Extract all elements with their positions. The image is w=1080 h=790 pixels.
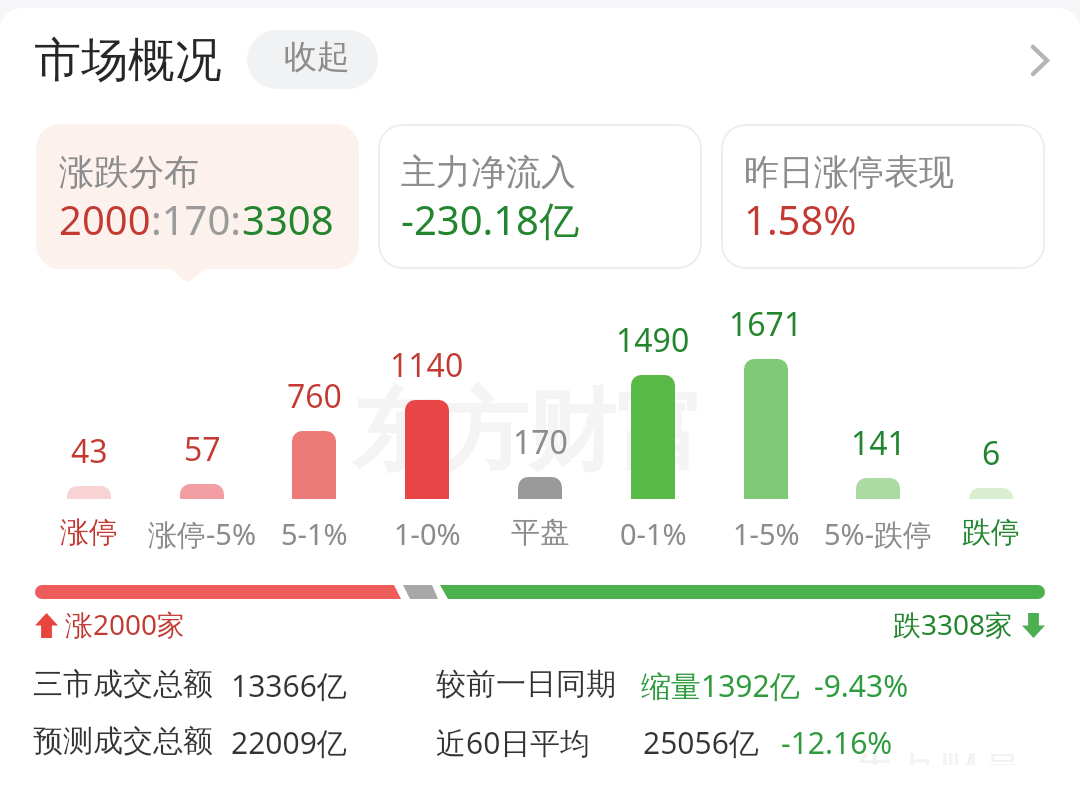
staticText: 5-1% (281, 514, 348, 553)
staticText: 6 (982, 431, 1001, 475)
staticText: 昨日涨停表现 (744, 150, 954, 194)
staticText: 1671 (729, 302, 803, 346)
button[interactable]: 主力净流入 (378, 124, 702, 269)
staticText: 平盘 (511, 514, 569, 551)
button[interactable]: 昨日涨停表现 (721, 124, 1045, 269)
staticText: 较前一日同期 (436, 665, 616, 703)
button[interactable]: 展开 (1008, 28, 1072, 92)
staticText: 近60日平均 (436, 722, 591, 763)
staticText: 跌3308家 (893, 605, 1014, 643)
staticText: 涨跌分布 (59, 150, 199, 194)
staticText: 东方财富网 (855, 753, 1066, 765)
staticText: -12.16% (781, 722, 893, 763)
staticText: 主力净流入 (401, 150, 576, 194)
staticText: 跌停 (962, 514, 1020, 551)
staticText: 1140 (390, 343, 464, 387)
staticText: 预测成交总额 (33, 722, 213, 760)
button[interactable]: 涨跌分布 (36, 124, 359, 269)
staticText: 1-5% (733, 514, 800, 553)
staticText: 5%-跌停 (824, 514, 933, 554)
staticText: 141 (851, 421, 906, 465)
staticText: 25056亿 (643, 722, 759, 763)
staticText: 760 (287, 374, 342, 418)
staticText: -230.18亿 (401, 192, 579, 247)
staticText: 170 (513, 420, 568, 464)
staticText: 1.58% (744, 192, 857, 246)
staticText: 缩量1392亿 (641, 665, 800, 706)
staticText: 涨停-5% (148, 514, 257, 554)
staticText: 涨2000家 (65, 605, 186, 643)
staticText: 三市成交总额 (33, 665, 213, 703)
staticText: 2000 (59, 192, 151, 246)
staticText: 1-0% (394, 514, 461, 553)
button[interactable]: 收起 (247, 30, 378, 89)
staticText: 收起 (284, 36, 350, 78)
staticText: 57 (184, 427, 221, 471)
staticText: 1490 (616, 318, 690, 362)
staticText: 0-1% (620, 514, 687, 553)
staticText: 43 (71, 429, 108, 473)
staticText: 市场概况 (34, 31, 222, 90)
staticText: 3308 (242, 192, 334, 246)
staticText: -9.43% (814, 665, 909, 706)
staticText: 13366亿 (231, 665, 347, 706)
staticText: 涨停 (60, 514, 118, 551)
staticText: 22009亿 (231, 722, 347, 763)
staticText: 东方财富 (352, 376, 704, 487)
staticText: :170: (151, 192, 242, 246)
